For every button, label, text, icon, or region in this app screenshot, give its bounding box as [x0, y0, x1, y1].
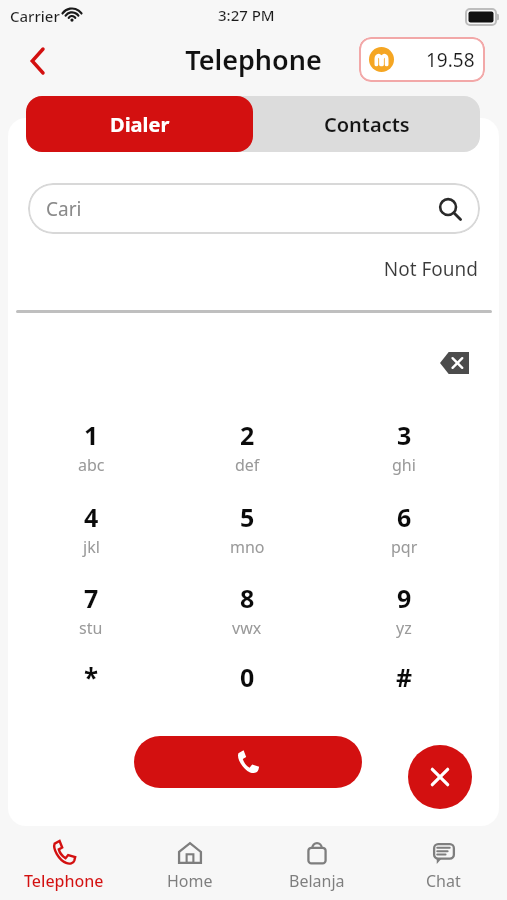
staticText: 5 [240, 500, 255, 534]
staticText: 7 [84, 581, 99, 615]
staticText: vwx [232, 617, 262, 639]
staticText: 3:27 PM [218, 5, 275, 25]
staticText: 2 [240, 418, 255, 452]
staticText: jkl [83, 536, 100, 558]
button[interactable]: 0 [199, 660, 295, 722]
button[interactable]: 8 [199, 581, 295, 643]
staticText: yz [396, 617, 412, 639]
staticText: Not Found [0, 256, 478, 282]
staticText: abc [78, 454, 105, 476]
button[interactable]: * [43, 660, 139, 722]
staticText: 9 [397, 581, 412, 615]
staticText: Cari [46, 196, 82, 222]
button[interactable]: 7 [43, 581, 139, 643]
staticText: 8 [240, 581, 255, 615]
button[interactable]: 9 [356, 581, 452, 643]
staticText: 3 [397, 418, 412, 452]
button[interactable]: 19.58 [359, 37, 485, 82]
staticText: Home [167, 870, 213, 892]
button[interactable]: Close [408, 745, 472, 809]
button[interactable]: Home [130, 836, 250, 898]
staticText: 6 [397, 500, 412, 534]
staticText: Contacts [324, 111, 410, 138]
staticText: 1 [84, 418, 99, 452]
staticText: mno [230, 536, 265, 558]
button[interactable]: Dialer [26, 96, 253, 152]
button[interactable]: 3 [356, 418, 452, 480]
button[interactable]: 2 [199, 418, 295, 480]
button[interactable]: 1 [43, 418, 139, 480]
staticText: Carrier [10, 6, 60, 26]
button[interactable]: 5 [199, 500, 295, 562]
staticText: 4 [84, 500, 99, 534]
button[interactable]: # [356, 660, 452, 722]
staticText: Telephone [24, 870, 104, 892]
button[interactable]: Cari [28, 183, 480, 234]
staticText: stu [79, 617, 103, 639]
staticText: # [396, 660, 413, 694]
button[interactable]: 4 [43, 500, 139, 562]
staticText: ghi [392, 454, 416, 476]
staticText: pqr [391, 536, 418, 558]
staticText: Belanja [289, 870, 345, 892]
staticText: 19.58 [426, 47, 475, 73]
staticText: * [84, 660, 99, 695]
button[interactable]: 6 [356, 500, 452, 562]
staticText: 0 [240, 660, 255, 694]
staticText: Dialer [110, 111, 170, 138]
button[interactable]: Back [16, 42, 60, 80]
staticText: Chat [426, 870, 461, 892]
button[interactable]: Telephone [4, 836, 124, 898]
staticText: Telephone [0, 41, 507, 78]
button[interactable]: Contacts [26, 96, 480, 152]
button[interactable]: Call [134, 736, 362, 788]
button[interactable]: Belanja [257, 836, 377, 898]
button[interactable]: Backspace [432, 346, 476, 380]
button[interactable]: Chat [383, 836, 503, 898]
staticText: def [235, 454, 260, 476]
